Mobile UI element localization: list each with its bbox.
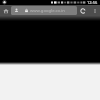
staticText: 12:56 [87, 0, 98, 5]
staticText: www.google.co.in [30, 8, 65, 14]
button[interactable]: More options [89, 5, 100, 16]
button[interactable]: Home [0, 5, 11, 16]
button[interactable]: Reload [77, 5, 89, 16]
button[interactable]: www.google.co.in [11, 6, 77, 15]
